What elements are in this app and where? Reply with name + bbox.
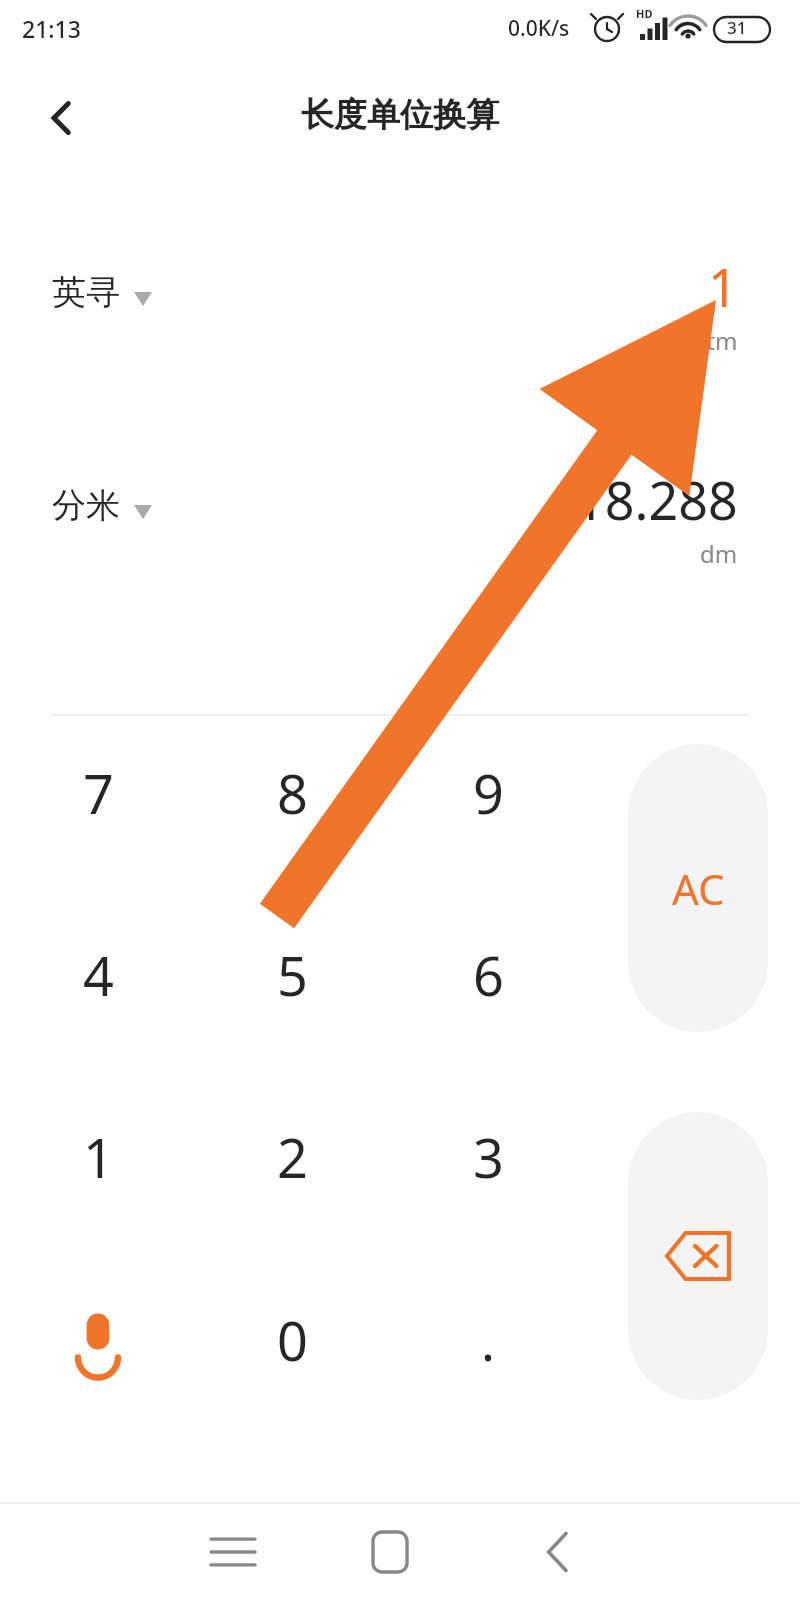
staticText: 0 [277, 1303, 308, 1377]
staticText: HD [636, 6, 653, 21]
staticText: 0.0K/s [508, 14, 570, 43]
staticText: 分米 [52, 484, 120, 527]
button[interactable]: 2 [212, 1097, 372, 1217]
staticText: 9 [473, 756, 504, 830]
staticText: 18.288 [575, 464, 738, 535]
button[interactable]: 0 [212, 1280, 372, 1400]
staticText: ftm [698, 324, 738, 357]
button[interactable]: 6 [408, 915, 568, 1035]
staticText: 长度单位换算 [0, 94, 800, 136]
button[interactable]: 3 [408, 1097, 568, 1217]
staticText: . [481, 1305, 495, 1376]
staticText: 1 [83, 1120, 114, 1194]
staticText: 4 [83, 938, 114, 1012]
staticText: 21:13 [22, 13, 81, 44]
button[interactable]: 5 [212, 915, 372, 1035]
button[interactable]: Home [330, 1503, 450, 1600]
button[interactable]: 4 [18, 915, 178, 1035]
staticText: 8 [277, 756, 308, 830]
button[interactable]: Backspace [628, 1112, 768, 1400]
button[interactable]: 英寻 [0, 255, 800, 365]
button[interactable]: Voice input [34, 1284, 162, 1396]
staticText: 7 [83, 756, 114, 830]
button[interactable]: 分米 [0, 468, 800, 578]
staticText: 英寻 [52, 271, 120, 314]
button[interactable]: . [408, 1280, 568, 1400]
staticText: dm [700, 537, 738, 570]
button[interactable]: AC [628, 744, 768, 1032]
staticText: 31 [727, 16, 747, 39]
staticText: AC [672, 860, 725, 917]
staticText: 1 [708, 251, 738, 322]
staticText: 6 [473, 938, 504, 1012]
button[interactable]: 9 [408, 733, 568, 853]
button[interactable]: Back [497, 1503, 617, 1600]
staticText: 5 [277, 938, 308, 1012]
button[interactable]: 8 [212, 733, 372, 853]
button[interactable]: Recent apps [173, 1503, 293, 1600]
button[interactable]: Back [28, 82, 100, 154]
staticText: 2 [277, 1120, 308, 1194]
staticText: 3 [473, 1120, 504, 1194]
button[interactable]: 1 [18, 1097, 178, 1217]
button[interactable]: 7 [18, 733, 178, 853]
